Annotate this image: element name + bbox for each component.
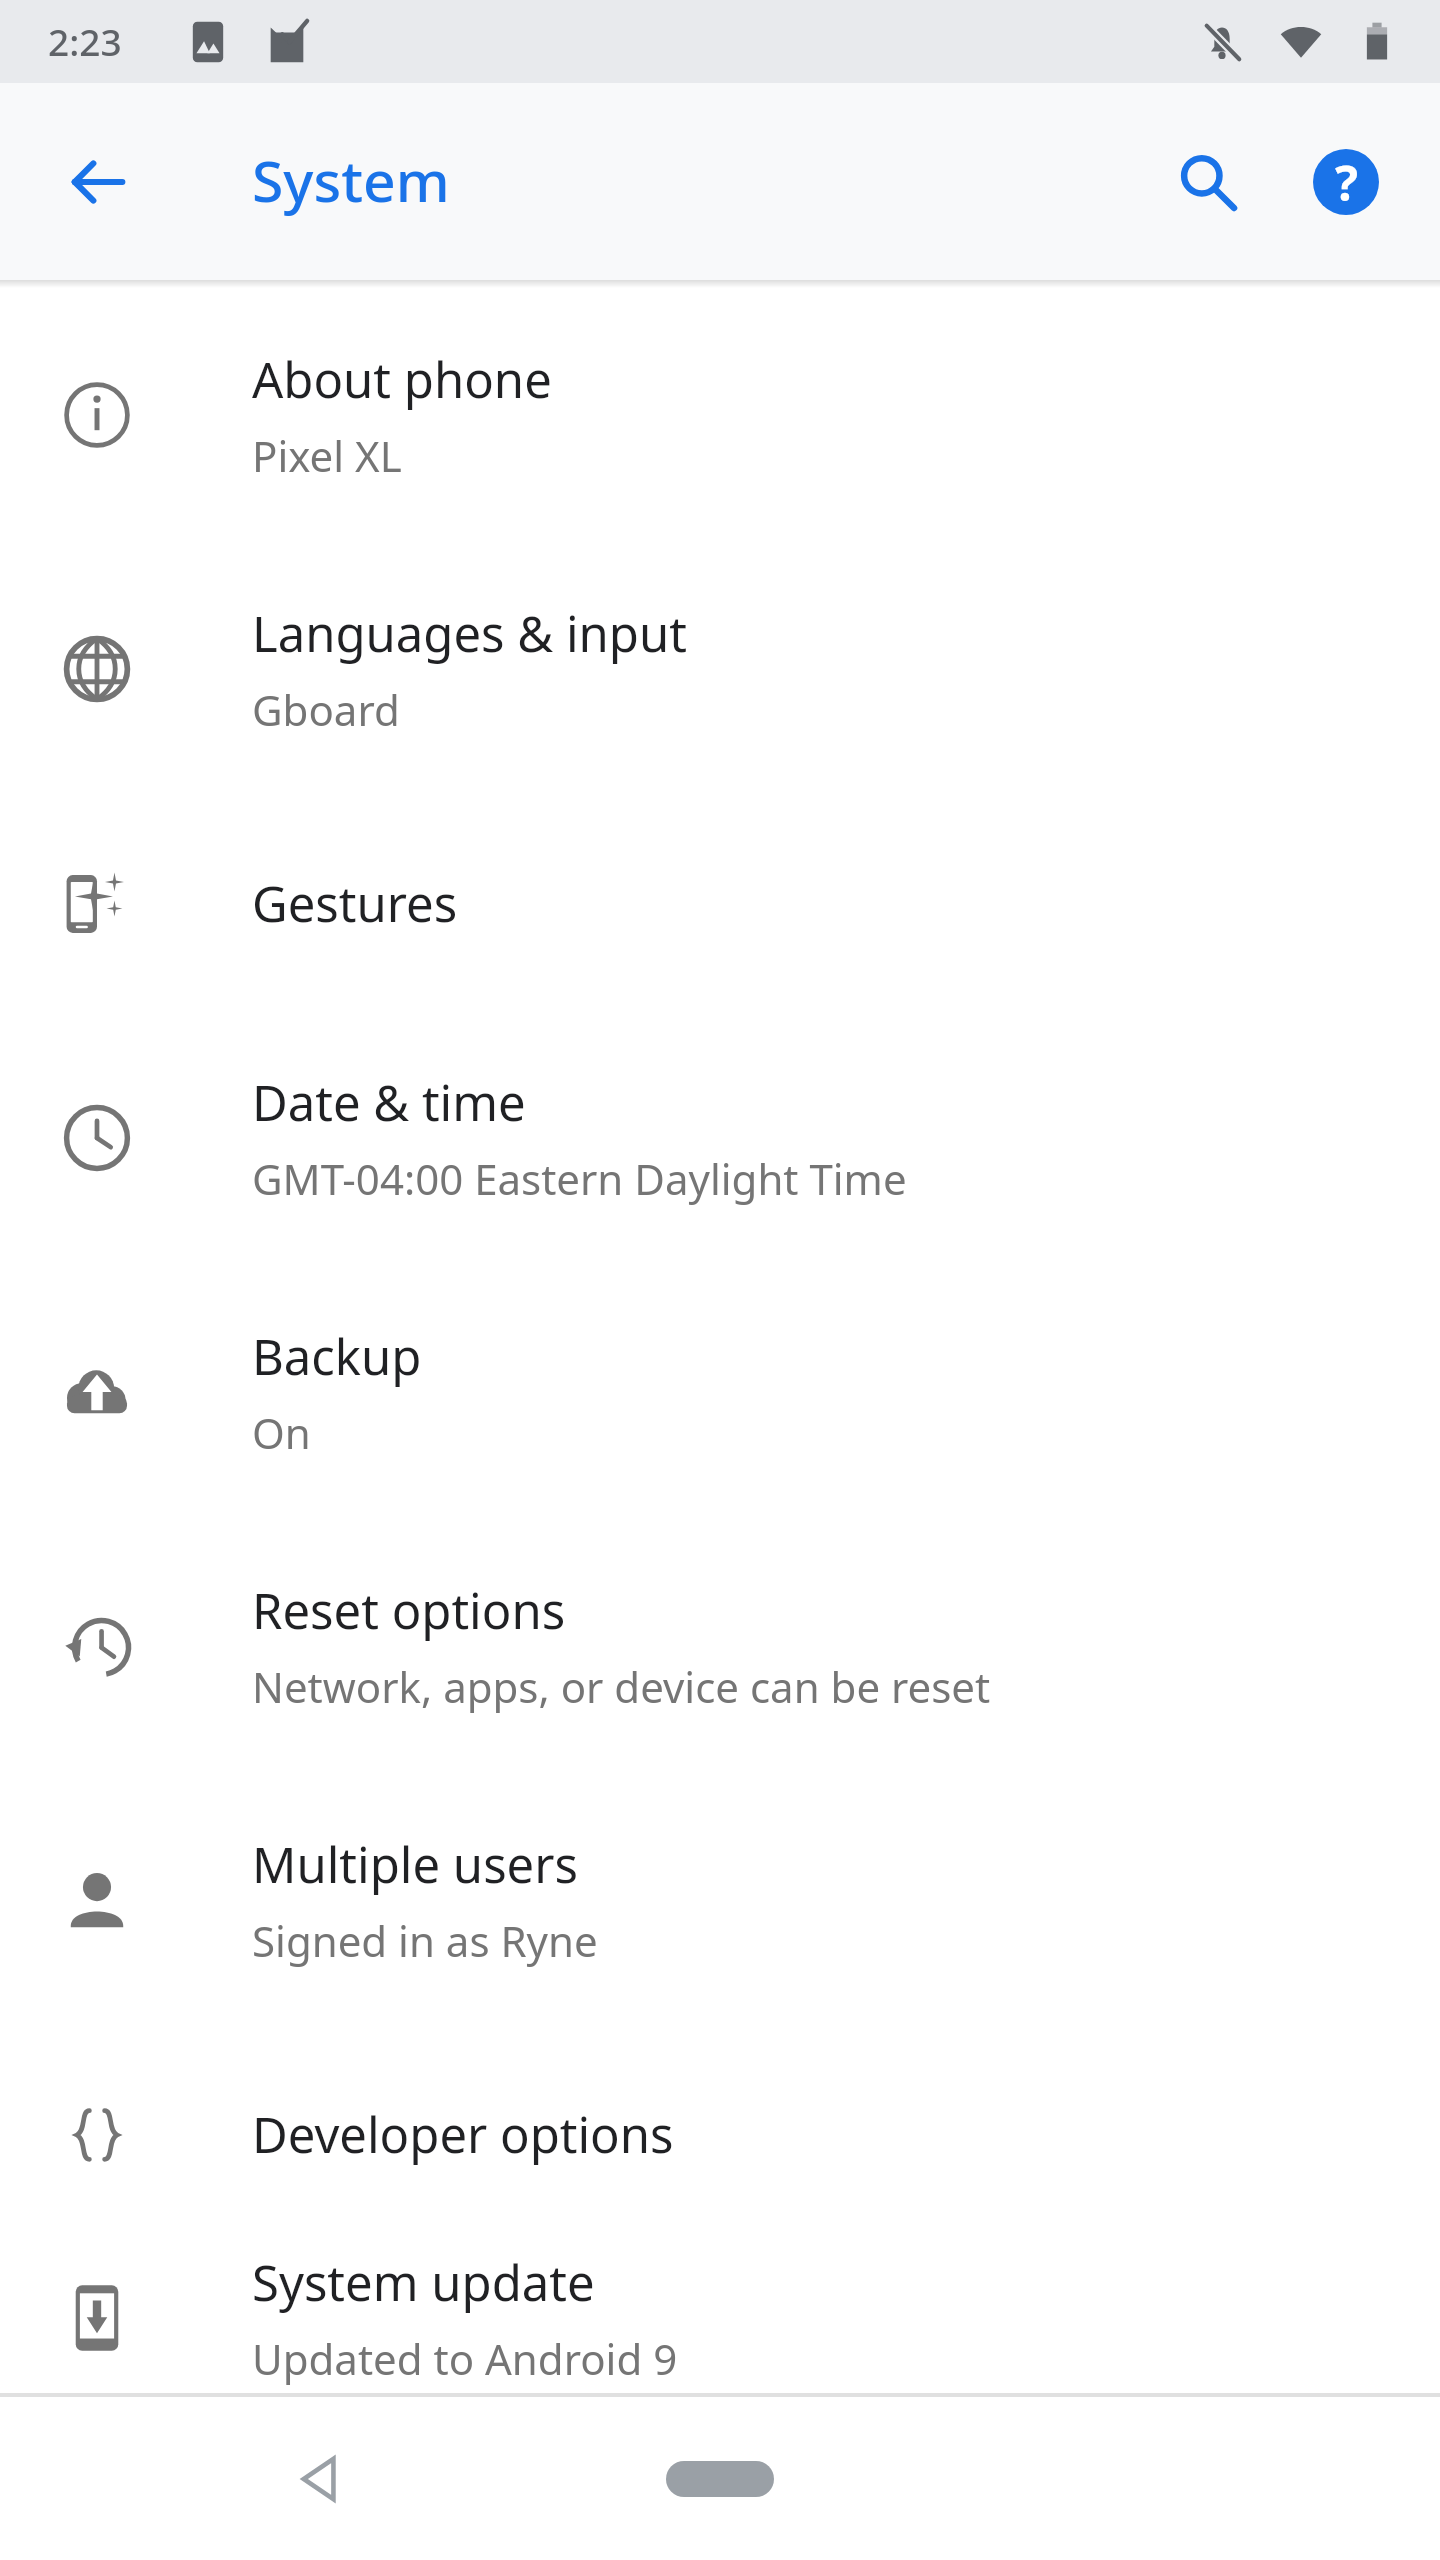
- staticText: Pixel XL: [252, 427, 402, 484]
- staticText: System: [252, 141, 450, 219]
- staticText: About phone: [252, 346, 552, 413]
- button[interactable]: Home: [640, 2419, 800, 2539]
- staticText: Developer options: [252, 2101, 674, 2168]
- button[interactable]: About phone: [0, 288, 1440, 542]
- staticText: Signed in as Ryne: [252, 1912, 598, 1969]
- staticText: Multiple users: [252, 1831, 578, 1898]
- staticText: GMT-04:00 Eastern Daylight Time: [252, 1150, 907, 1207]
- button[interactable]: Reset options: [0, 1519, 1440, 1773]
- staticText: Date & time: [252, 1069, 526, 1136]
- staticText: Gboard: [252, 681, 400, 738]
- button[interactable]: Multiple users: [0, 1773, 1440, 2027]
- button[interactable]: System update: [0, 2242, 1440, 2393]
- button[interactable]: Languages & input: [0, 542, 1440, 796]
- staticText: ?: [1335, 150, 1358, 215]
- button[interactable]: Date & time: [0, 1011, 1440, 1265]
- staticText: Languages & input: [252, 600, 687, 667]
- staticText: 2:23: [48, 16, 122, 66]
- staticText: Updated to Android 9: [252, 2330, 678, 2387]
- button[interactable]: Help: [1280, 116, 1412, 248]
- staticText: Gestures: [252, 870, 458, 937]
- button[interactable]: Back: [250, 2409, 390, 2549]
- staticText: Backup: [252, 1323, 422, 1390]
- button[interactable]: Search: [1142, 116, 1274, 248]
- button[interactable]: Back: [26, 110, 170, 254]
- staticText: On: [252, 1404, 311, 1461]
- staticText: Network, apps, or device can be reset: [252, 1658, 991, 1715]
- staticText: Reset options: [252, 1577, 566, 1644]
- button[interactable]: Backup: [0, 1265, 1440, 1519]
- button[interactable]: Gestures: [0, 796, 1440, 1011]
- staticText: System update: [252, 2249, 595, 2316]
- button[interactable]: Developer options: [0, 2027, 1440, 2242]
